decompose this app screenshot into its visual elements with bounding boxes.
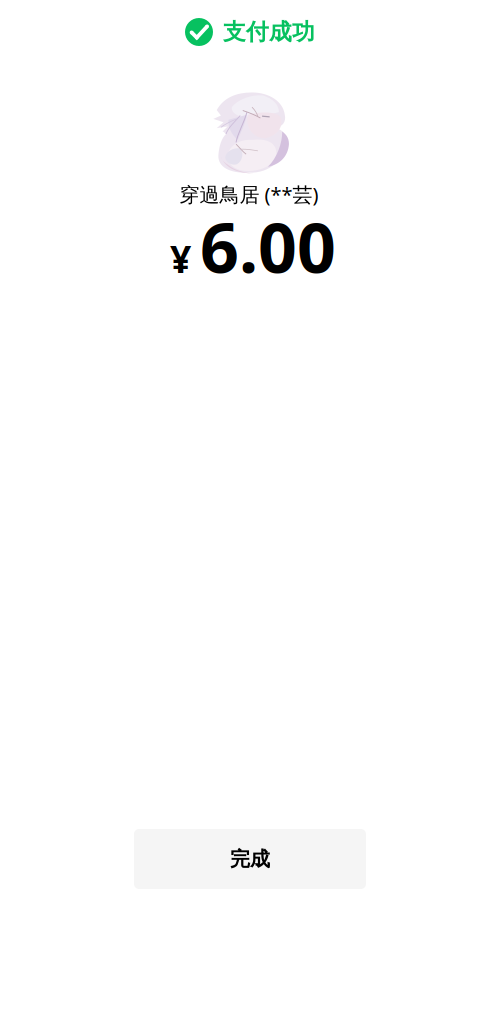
staticText: 穿過鳥居 (**芸) [179,181,318,208]
button[interactable]: 完成 [134,829,366,889]
staticText: ¥ [170,234,191,283]
staticText: 支付成功 [223,18,315,46]
staticText: 6.00 [200,202,336,292]
staticText: 完成 [230,847,270,871]
